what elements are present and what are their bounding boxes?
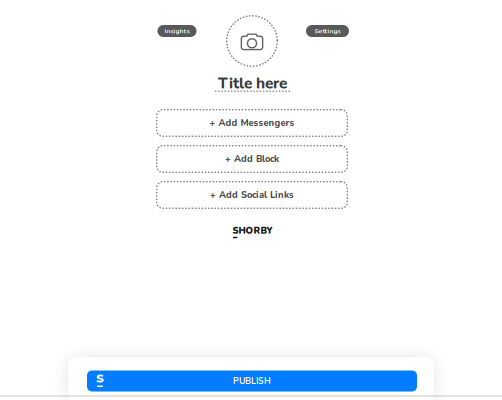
staticText: Settings	[314, 26, 340, 36]
button[interactable]: Title here	[212, 77, 292, 95]
staticText: Insights	[164, 26, 189, 36]
staticText: + Add Block	[225, 153, 279, 165]
staticText: PUBLISH	[233, 375, 271, 387]
staticText: SHORBY	[233, 224, 273, 237]
staticText: Title here	[218, 73, 287, 94]
button[interactable]: + Add Block	[156, 145, 348, 173]
button[interactable]: Settings	[306, 25, 349, 37]
button[interactable]: + Add Messengers	[156, 109, 348, 137]
button[interactable]: PUBLISH	[87, 370, 417, 391]
staticText: + Add Messengers	[209, 117, 294, 129]
button[interactable]: Insights	[157, 25, 196, 37]
staticText: + Add Social Links	[210, 189, 294, 201]
staticText: S	[96, 370, 104, 387]
button[interactable]: + Add Social Links	[156, 181, 348, 209]
button[interactable]: Change photo	[226, 15, 278, 67]
